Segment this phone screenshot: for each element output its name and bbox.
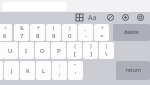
staticText: } — [90, 43, 92, 50]
staticText: ] — [90, 50, 92, 58]
staticText: J — [11, 67, 13, 75]
button[interactable]: + — [94, 24, 109, 41]
staticText: K — [26, 67, 30, 75]
button[interactable]: Text style — [86, 12, 99, 23]
button[interactable]: & — [14, 24, 29, 41]
staticText: ) — [69, 25, 71, 32]
staticText: | — [105, 43, 108, 50]
button[interactable]: H — [0, 61, 3, 80]
staticText: I — [25, 47, 28, 55]
staticText: 9 — [52, 32, 56, 40]
button[interactable]: Stickers — [105, 12, 116, 23]
button[interactable]: K — [20, 61, 35, 80]
staticText: * — [37, 25, 40, 32]
staticText: \ — [105, 50, 108, 58]
staticText: U — [8, 47, 13, 55]
button[interactable]: * — [30, 24, 45, 41]
staticText: _ — [84, 25, 87, 32]
staticText: return — [126, 67, 141, 74]
button[interactable]: return — [116, 61, 150, 80]
button[interactable]: Account — [135, 12, 146, 23]
staticText: P — [57, 47, 61, 55]
staticText: : — [59, 63, 61, 70]
staticText: O — [40, 47, 45, 55]
staticText: 0 — [68, 32, 72, 40]
button[interactable]: Apps — [74, 12, 85, 23]
button[interactable]: : — [52, 61, 67, 80]
button[interactable]: P — [51, 42, 66, 59]
staticText: { — [74, 43, 76, 50]
button[interactable]: ( — [46, 24, 61, 41]
button[interactable]: } — [83, 42, 98, 59]
button[interactable]: J — [4, 61, 19, 80]
staticText: [ — [74, 50, 76, 58]
staticText: = — [100, 32, 104, 40]
staticText: ( — [53, 25, 55, 32]
button[interactable]: _ — [78, 24, 93, 41]
staticText: L — [42, 67, 46, 75]
button[interactable]: I — [19, 42, 34, 59]
staticText: ^ — [4, 25, 7, 32]
staticText: ' — [75, 70, 77, 78]
button[interactable]: | — [99, 42, 114, 59]
staticText: ; — [59, 70, 61, 78]
button[interactable]: U — [3, 42, 18, 59]
staticText: 8 — [36, 32, 40, 40]
button[interactable]: ) — [62, 24, 77, 41]
button[interactable]: { — [67, 42, 82, 59]
staticText: delete — [124, 29, 139, 36]
button[interactable]: " — [68, 61, 83, 80]
staticText: " — [74, 63, 77, 70]
staticText: & — [20, 25, 24, 32]
staticText: Aa — [88, 13, 97, 23]
button[interactable]: delete — [113, 24, 150, 41]
button[interactable]: ^ — [0, 24, 12, 41]
staticText: + — [101, 25, 104, 32]
button[interactable]: L — [36, 61, 51, 80]
button[interactable]: Y — [0, 42, 4, 59]
staticText: 6 — [3, 32, 7, 40]
button[interactable]: O — [35, 42, 50, 59]
button[interactable]: Add — [120, 12, 131, 23]
staticText: - — [85, 32, 87, 40]
staticText: 7 — [20, 32, 24, 40]
